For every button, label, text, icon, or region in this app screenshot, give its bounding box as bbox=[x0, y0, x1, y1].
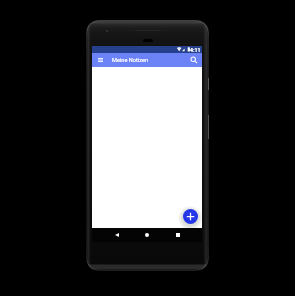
button[interactable]: Search bbox=[187, 54, 199, 66]
staticText: 4:11 bbox=[190, 47, 201, 53]
button[interactable]: Home bbox=[140, 228, 154, 242]
button[interactable]: Recent apps bbox=[171, 228, 185, 242]
button[interactable]: Open navigation menu bbox=[94, 54, 106, 66]
staticText: Meine Notizen bbox=[112, 57, 149, 64]
button[interactable]: Add note bbox=[183, 209, 198, 224]
button[interactable]: Back bbox=[110, 228, 124, 242]
